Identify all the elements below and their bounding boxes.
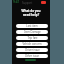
button[interactable]: Home indicator	[25, 59, 36, 61]
staticText: Driver issue	[25, 48, 40, 52]
staticText: Support	[22, 1, 33, 5]
staticText: Other issue	[25, 54, 39, 58]
button[interactable]: Driver issue	[16, 48, 48, 52]
staticText: 9:41	[13, 0, 20, 4]
button[interactable]: Trip fare	[16, 36, 48, 40]
staticText: Trip fare	[27, 36, 38, 40]
staticText: What do you need help?	[12, 9, 50, 17]
staticText: Vehicle concern	[22, 42, 42, 46]
button[interactable]: Recording	[41, 1, 46, 4]
button[interactable]: Vehicle concern	[16, 42, 48, 46]
button[interactable]: Lost item	[16, 24, 48, 28]
button[interactable]: Item Damage	[16, 30, 48, 34]
staticText: Item Damage	[24, 30, 41, 34]
staticText: Lost item	[26, 24, 38, 28]
button[interactable]: Other issue	[16, 54, 48, 58]
